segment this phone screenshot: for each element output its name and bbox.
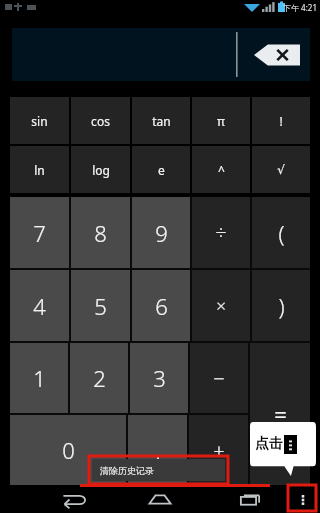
button[interactable]: + xyxy=(189,415,248,485)
staticText: 7 xyxy=(33,218,46,248)
staticText: ^ xyxy=(218,162,225,178)
staticText: 下午 4:21 xyxy=(283,2,317,13)
staticText: 4 xyxy=(33,291,46,321)
button[interactable]: Home xyxy=(141,486,179,512)
button[interactable]: ÷ xyxy=(192,197,250,268)
staticText: 3 xyxy=(153,363,166,393)
staticText: log xyxy=(92,162,110,178)
staticText: π xyxy=(217,113,225,129)
button[interactable]: = xyxy=(250,343,310,485)
staticText: 5 xyxy=(94,291,107,321)
staticText: ( xyxy=(278,218,285,248)
button[interactable]: ! xyxy=(252,97,310,144)
staticText: 8 xyxy=(94,218,107,248)
button[interactable]: ) xyxy=(252,270,310,341)
staticText: 2 xyxy=(93,363,106,393)
staticText: = xyxy=(274,399,287,429)
staticText: 6 xyxy=(155,291,168,321)
button[interactable]: . xyxy=(128,415,187,485)
button[interactable]: Delete xyxy=(254,42,300,68)
button[interactable]: log xyxy=(71,146,130,193)
button[interactable]: 6 xyxy=(132,270,190,341)
button[interactable]: 7 xyxy=(10,197,69,268)
button[interactable]: cos xyxy=(71,97,130,144)
staticText: ) xyxy=(278,291,285,321)
staticText: 清除历史记录 xyxy=(100,465,154,476)
button[interactable]: √ xyxy=(252,146,310,193)
staticText: e xyxy=(158,162,165,178)
button[interactable]: − xyxy=(190,343,248,413)
staticText: √ xyxy=(277,163,285,177)
button[interactable]: e xyxy=(132,146,190,193)
staticText: . xyxy=(155,435,161,465)
button[interactable]: 5 xyxy=(71,270,130,341)
button[interactable]: 1 xyxy=(10,343,68,413)
staticText: − xyxy=(213,365,225,392)
staticText: tan xyxy=(152,113,171,129)
staticText: 1 xyxy=(33,363,46,393)
button[interactable]: 8 xyxy=(71,197,130,268)
staticText: ln xyxy=(34,162,45,178)
staticText: sin xyxy=(31,113,48,129)
button[interactable]: 清除历史记录 xyxy=(92,459,225,481)
button[interactable]: Delete xyxy=(12,28,310,81)
staticText: ! xyxy=(279,113,283,129)
button[interactable]: More options xyxy=(286,485,320,513)
button[interactable]: 3 xyxy=(130,343,188,413)
staticText: ÷ xyxy=(215,219,227,246)
staticText: 0 xyxy=(62,435,75,465)
button[interactable]: × xyxy=(192,270,250,341)
button[interactable]: 9 xyxy=(132,197,190,268)
button[interactable]: tan xyxy=(132,97,190,144)
button[interactable]: Recents xyxy=(231,486,269,512)
staticText: × xyxy=(216,294,226,317)
staticText: 点击 xyxy=(255,435,283,453)
button[interactable]: 2 xyxy=(70,343,128,413)
button[interactable]: 4 xyxy=(10,270,69,341)
button[interactable]: ( xyxy=(252,197,310,268)
staticText: + xyxy=(213,437,225,464)
button[interactable]: ln xyxy=(10,146,69,193)
staticText: 9 xyxy=(155,218,168,248)
button[interactable]: 0 xyxy=(10,415,126,485)
button[interactable]: sin xyxy=(10,97,69,144)
button[interactable]: π xyxy=(192,97,250,144)
button[interactable]: Back xyxy=(52,486,90,512)
button[interactable]: ^ xyxy=(192,146,250,193)
staticText: cos xyxy=(91,113,110,129)
